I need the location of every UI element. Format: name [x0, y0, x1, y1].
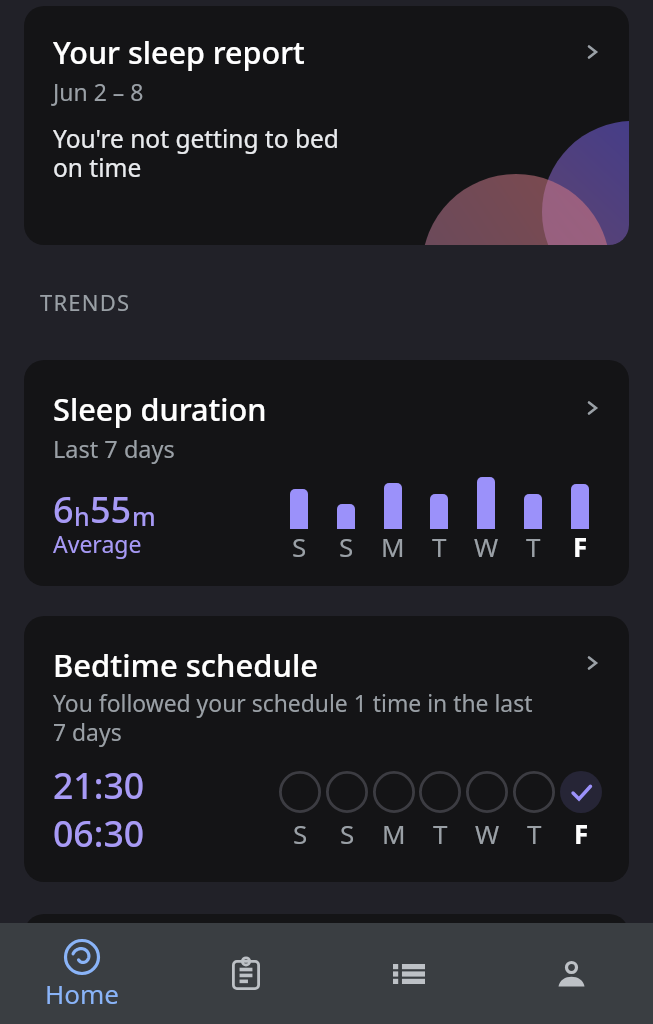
staticText: F [574, 816, 589, 851]
button[interactable]: Profile [490, 923, 653, 1024]
staticText: F [573, 529, 588, 564]
button[interactable]: Browse [327, 923, 490, 1024]
staticText: Sleep duration [53, 388, 267, 430]
staticText: m [132, 499, 156, 533]
staticText: T [527, 816, 542, 851]
staticText: Bedtime schedule [53, 644, 319, 686]
staticText: Average [53, 528, 142, 559]
button[interactable]: Journal [164, 923, 327, 1024]
button[interactable]: Bedtime schedule [24, 616, 629, 882]
staticText: W [475, 816, 500, 851]
staticText: S [339, 529, 354, 564]
staticText: Your sleep report [53, 31, 305, 73]
staticText: T [432, 529, 447, 564]
staticText: T [526, 529, 541, 564]
staticText: 6 [53, 485, 74, 534]
staticText: Jun 2 – 8 [53, 76, 144, 107]
staticText: 21:30 [53, 761, 145, 809]
button[interactable]: Open details [580, 650, 606, 676]
button[interactable]: Your sleep report [24, 6, 629, 245]
staticText: M [382, 816, 406, 851]
button[interactable]: Open details [580, 395, 606, 421]
staticText: You followed your schedule 1 time in the… [53, 688, 533, 748]
button[interactable]: Open details [580, 39, 606, 65]
staticText: You're not getting to bed on time [53, 122, 339, 184]
staticText: W [474, 529, 499, 564]
staticText: S [292, 529, 307, 564]
staticText: Last 7 days [53, 433, 175, 465]
button[interactable]: Sleep duration [24, 360, 629, 586]
staticText: h [74, 499, 90, 533]
staticText: 55 [90, 485, 132, 534]
staticText: T [433, 816, 448, 851]
staticText: TRENDS [40, 287, 131, 317]
staticText: S [293, 816, 308, 851]
button[interactable]: Home [0, 923, 164, 1024]
staticText: 06:30 [53, 809, 145, 857]
staticText: Home [45, 976, 119, 1011]
staticText: S [340, 816, 355, 851]
staticText: M [381, 529, 405, 564]
